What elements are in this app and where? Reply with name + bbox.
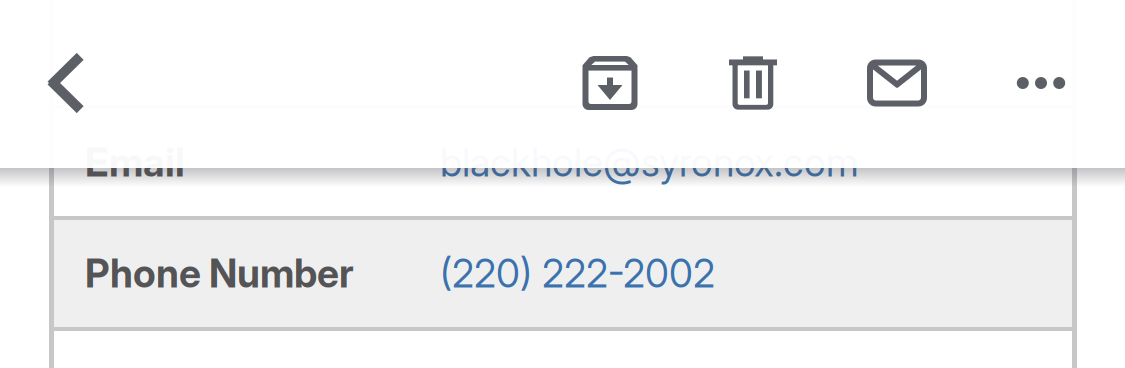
button[interactable]: More options (1005, 47, 1077, 119)
button[interactable]: Email (54, 109, 1072, 216)
button[interactable]: Phone Number (54, 220, 1072, 327)
button[interactable]: Mail (861, 47, 933, 119)
button[interactable]: Row (54, 0, 1072, 105)
staticText: blackhole@syronox.com (440, 139, 859, 186)
button[interactable]: Delete (717, 47, 789, 119)
button[interactable]: Archive (574, 47, 646, 119)
staticText: Email (85, 139, 185, 186)
button[interactable]: Back (30, 48, 100, 118)
staticText: Phone Number (85, 250, 354, 297)
staticText: (220) 222-2002 (440, 250, 715, 297)
